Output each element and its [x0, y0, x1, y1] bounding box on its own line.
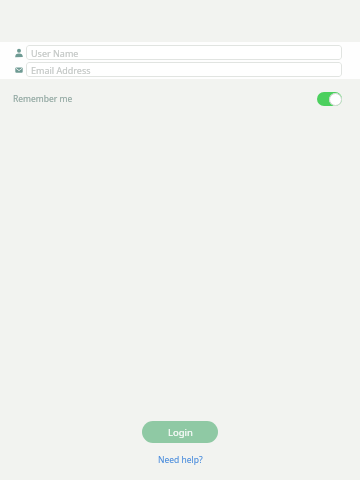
button[interactable]: User Name — [26, 45, 342, 60]
button[interactable]: Email Address — [26, 62, 342, 77]
staticText: Email Address — [31, 64, 91, 76]
staticText: User Name — [31, 47, 79, 59]
button[interactable]: Need help? — [158, 454, 203, 466]
button[interactable] — [317, 92, 342, 106]
staticText: Remember me — [13, 93, 73, 105]
staticText: Login — [168, 426, 193, 439]
button[interactable]: Login — [142, 421, 218, 443]
staticText: Need help? — [158, 454, 203, 466]
